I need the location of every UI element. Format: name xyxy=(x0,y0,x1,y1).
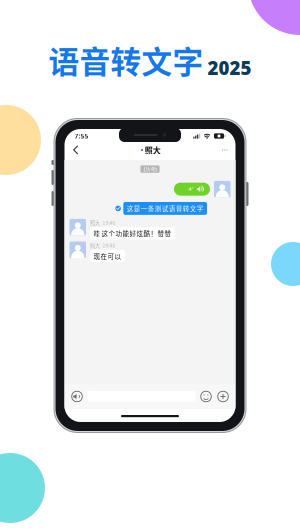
staticText: 7:55 xyxy=(74,132,88,140)
staticText: 现在可以 xyxy=(93,251,121,261)
staticText: 照大 xyxy=(90,241,100,249)
button[interactable]: Back xyxy=(67,141,84,159)
staticText: 2025 xyxy=(207,55,251,80)
staticText: 4″ xyxy=(188,186,193,193)
staticText: 这是一条测试语音转文字 xyxy=(127,204,204,213)
staticText: 19:45 xyxy=(143,165,157,173)
staticText: 语音转文字 xyxy=(48,38,203,82)
button[interactable]: Emoji xyxy=(199,390,212,403)
staticText: 照大 xyxy=(90,219,100,226)
staticText: 19:46 xyxy=(102,242,115,249)
staticText: 照大 xyxy=(145,144,161,156)
staticText: 哇 这个功能好炫酷！赞赞 xyxy=(93,229,171,238)
button[interactable]: More xyxy=(217,143,232,156)
button[interactable]: Voice input xyxy=(70,390,83,403)
staticText: 19:46 xyxy=(102,219,115,226)
button[interactable]: More options xyxy=(216,390,229,403)
